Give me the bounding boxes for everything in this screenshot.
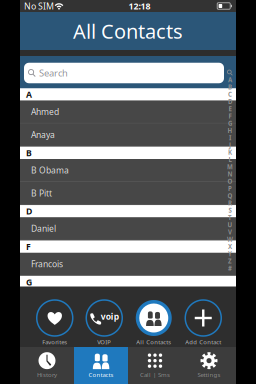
- button[interactable]: Anaya: [20, 124, 236, 147]
- staticText: I: [229, 134, 231, 142]
- button[interactable]: Ahmed: [20, 101, 236, 124]
- button[interactable]: Settings: [182, 347, 236, 384]
- staticText: Q: [227, 192, 232, 200]
- button[interactable]: Francois: [20, 253, 236, 276]
- staticText: L: [228, 155, 231, 164]
- staticText: B Pitt: [31, 187, 52, 199]
- button[interactable]: B Pitt: [20, 182, 236, 205]
- staticText: Settings: [197, 371, 220, 379]
- staticText: Anaya: [31, 129, 55, 140]
- staticText: N: [227, 170, 232, 178]
- staticText: Add Contact: [185, 338, 221, 346]
- staticText: Z: [228, 257, 232, 265]
- staticText: Call | Sms: [140, 371, 170, 379]
- staticText: No SIM: [24, 0, 54, 12]
- staticText: All Contacts: [136, 338, 171, 346]
- staticText: Search: [39, 67, 68, 79]
- staticText: Favorites: [42, 338, 67, 346]
- button[interactable]: Daniel: [20, 217, 236, 240]
- staticText: A: [26, 88, 32, 100]
- staticText: D: [228, 97, 232, 106]
- staticText: U: [227, 221, 232, 229]
- staticText: T: [228, 213, 232, 222]
- staticText: A: [228, 76, 232, 84]
- button[interactable]: Favorites: [30, 299, 79, 347]
- staticText: J: [229, 141, 231, 149]
- staticText: B: [26, 147, 32, 159]
- staticText: X: [228, 242, 232, 251]
- button[interactable]: Alphabet index: [225, 69, 235, 272]
- staticText: F: [26, 241, 31, 252]
- staticText: O: [227, 177, 232, 186]
- staticText: R: [228, 199, 232, 207]
- staticText: S: [228, 206, 231, 215]
- staticText: K: [228, 148, 232, 157]
- staticText: E: [228, 105, 231, 113]
- staticText: Francois: [31, 258, 63, 270]
- button[interactable]: voip: [79, 299, 129, 347]
- button[interactable]: Contacts: [74, 347, 128, 384]
- button[interactable]: History: [20, 347, 74, 384]
- staticText: W: [227, 235, 233, 244]
- staticText: 12:18: [129, 0, 151, 12]
- staticText: Daniel: [31, 223, 56, 234]
- staticText: History: [37, 371, 57, 379]
- staticText: D: [26, 205, 32, 217]
- staticText: G: [228, 119, 232, 128]
- staticText: VOIP: [97, 338, 111, 346]
- staticText: V: [228, 228, 232, 236]
- button[interactable]: B Obama: [20, 159, 236, 182]
- staticText: P: [228, 184, 232, 193]
- staticText: All Contacts: [73, 17, 183, 45]
- staticText: C: [228, 90, 232, 99]
- staticText: Y: [228, 250, 232, 258]
- staticText: Ahmed: [31, 106, 59, 117]
- staticText: H: [227, 126, 232, 135]
- button[interactable]: Search: [24, 63, 224, 83]
- staticText: #: [228, 264, 232, 273]
- button[interactable]: All Contacts: [129, 299, 178, 347]
- button[interactable]: Add Contact: [178, 299, 228, 347]
- staticText: M: [227, 163, 233, 171]
- staticText: Contacts: [88, 371, 113, 379]
- staticText: B: [228, 83, 232, 91]
- staticText: F: [228, 112, 231, 120]
- staticText: voip: [101, 311, 119, 322]
- button[interactable]: Call | Sms: [128, 347, 182, 384]
- staticText: B Obama: [31, 164, 69, 176]
- staticText: G: [26, 276, 32, 288]
